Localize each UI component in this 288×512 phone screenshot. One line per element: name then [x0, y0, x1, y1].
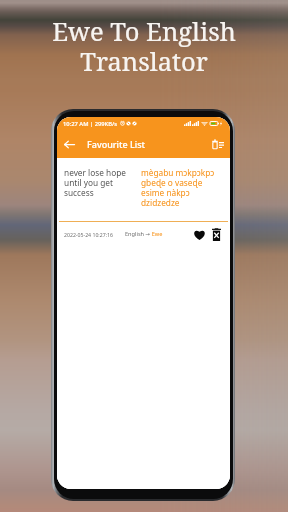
staticText: 2022-05-24 10:27:16: [64, 231, 114, 238]
staticText: English → Ewe: [125, 230, 163, 238]
button[interactable]: never lose hope until you get success: [59, 163, 228, 246]
staticText: mègabu mɔkpɔkpɔ gbeɖe o vaseɖe esime nàk…: [141, 167, 223, 208]
staticText: Favourite List: [87, 138, 146, 150]
staticText: 10:27 AM | 299KB/s: [63, 120, 118, 128]
staticText: Ewe To English Translator: [0, 14, 288, 79]
button[interactable]: Delete: [208, 224, 225, 244]
staticText: never lose hope until you get success: [64, 167, 136, 198]
button[interactable]: Back: [57, 131, 81, 158]
button[interactable]: Favourite: [190, 224, 208, 244]
button[interactable]: Clear all: [207, 131, 229, 158]
